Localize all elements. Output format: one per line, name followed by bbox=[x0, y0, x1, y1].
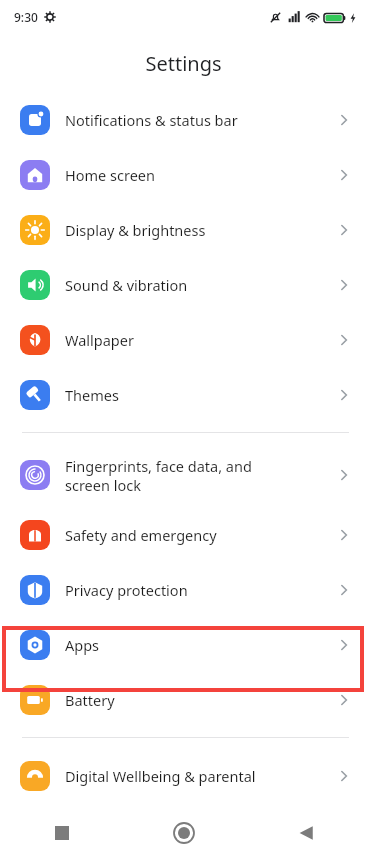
button[interactable]: Apps bbox=[0, 617, 367, 672]
staticText: Digital Wellbeing & parental bbox=[65, 766, 335, 786]
button[interactable]: Recents bbox=[0, 811, 123, 855]
staticText: Settings bbox=[145, 50, 222, 77]
button[interactable]: Privacy protection bbox=[0, 562, 367, 617]
button[interactable]: Notifications & status bar bbox=[0, 92, 367, 147]
staticText: Home screen bbox=[65, 165, 335, 185]
button[interactable]: Display & brightness bbox=[0, 202, 367, 257]
button[interactable]: Home bbox=[123, 811, 245, 855]
button[interactable]: Safety and emergency bbox=[0, 507, 367, 562]
staticText: Wallpaper bbox=[65, 330, 335, 350]
staticText: Privacy protection bbox=[65, 580, 335, 600]
staticText: Safety and emergency bbox=[65, 525, 335, 545]
staticText: Display & brightness bbox=[65, 220, 335, 240]
staticText: Notifications & status bar bbox=[65, 110, 335, 130]
staticText: Battery bbox=[65, 690, 335, 710]
button[interactable]: Battery bbox=[0, 672, 367, 727]
button[interactable]: Digital Wellbeing & parental bbox=[0, 748, 367, 803]
staticText: Themes bbox=[65, 385, 335, 405]
staticText: 9:30 bbox=[14, 9, 38, 25]
staticText: Sound & vibration bbox=[65, 275, 335, 295]
staticText: Fingerprints, face data, and screen lock bbox=[65, 456, 335, 495]
staticText: Apps bbox=[65, 635, 335, 655]
button[interactable]: Fingerprints, face data, and screen lock bbox=[0, 443, 367, 507]
button[interactable]: Wallpaper bbox=[0, 312, 367, 367]
button[interactable]: Back bbox=[245, 811, 367, 855]
button[interactable]: Themes bbox=[0, 367, 367, 422]
button[interactable]: Sound & vibration bbox=[0, 257, 367, 312]
button[interactable]: Home screen bbox=[0, 147, 367, 202]
